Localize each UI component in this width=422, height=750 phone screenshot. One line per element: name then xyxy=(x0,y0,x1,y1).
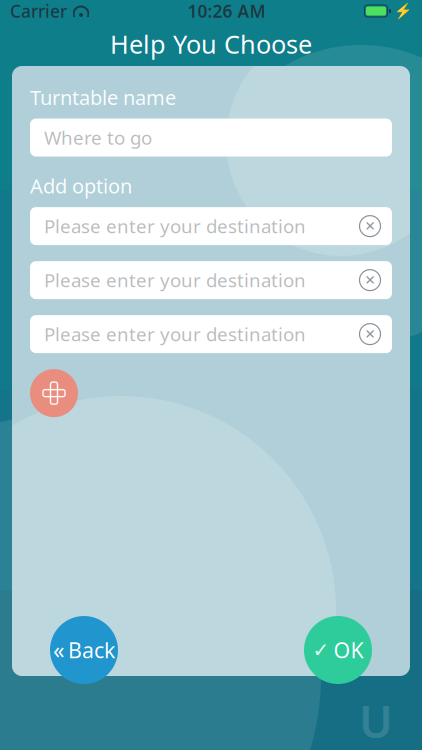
button[interactable]: Clear text xyxy=(358,322,392,346)
staticText: Add option xyxy=(30,173,132,199)
staticText: O xyxy=(358,618,394,678)
staticText: U xyxy=(359,690,393,750)
staticText: OK xyxy=(333,636,363,664)
staticText: ✓ xyxy=(312,639,329,661)
staticText: ✕ xyxy=(364,273,375,288)
staticText: Where to go xyxy=(44,125,152,150)
staticText: ✕ xyxy=(364,327,375,342)
staticText: E xyxy=(363,329,388,390)
button[interactable]: Clear text xyxy=(358,268,392,292)
staticText: Carrier xyxy=(10,0,67,22)
staticText: ✕ xyxy=(364,219,375,234)
staticText: ⚡ xyxy=(394,3,412,19)
staticText: Turntable name xyxy=(30,84,176,111)
staticText: Help You Choose xyxy=(110,27,312,61)
button[interactable]: « xyxy=(50,616,118,684)
staticText: « xyxy=(53,635,65,665)
button[interactable]: Clear text xyxy=(358,214,392,238)
staticText: Back xyxy=(68,636,115,664)
staticText: 10:26 AM xyxy=(187,0,265,22)
staticText: Please enter your destination xyxy=(44,322,306,346)
staticText: Please enter your destination xyxy=(44,268,306,292)
button[interactable]: Add option xyxy=(30,369,78,417)
button[interactable]: ✓ xyxy=(304,616,372,684)
staticText: Please enter your destination xyxy=(44,214,306,238)
